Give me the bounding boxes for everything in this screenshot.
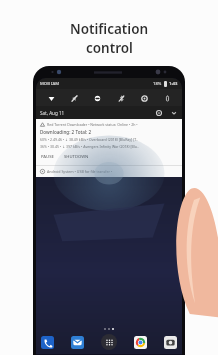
- staticText: Android System • USB for file transfer •: [47, 169, 113, 174]
- staticText: SHUTDOWN: [64, 154, 89, 160]
- button[interactable]: Phone: [41, 336, 54, 349]
- button[interactable]: Settings: [154, 108, 163, 117]
- button[interactable]: Battery saver: [159, 90, 175, 106]
- staticText: 18%: [153, 81, 162, 87]
- button[interactable]: Bluetooth off: [113, 90, 129, 106]
- button[interactable]: Do not disturb: [89, 90, 105, 106]
- button[interactable]: Camera: [164, 336, 177, 349]
- staticText: Notification: [70, 20, 149, 38]
- button[interactable]: Android System • USB for file transfer •: [36, 166, 182, 177]
- button[interactable]: All apps: [101, 334, 117, 350]
- button[interactable]: Expand: [169, 108, 178, 117]
- staticText: 36% • 30.45 • ↓ 397 kB/s • Avengers Infi…: [40, 144, 139, 149]
- button[interactable]: SHUTDOWN: [63, 153, 90, 161]
- staticText: Downloading: 2 Total: 2: [40, 129, 92, 135]
- button[interactable]: Messages: [71, 336, 84, 349]
- staticText: Sat, Aug 11: [40, 110, 65, 116]
- staticText: 60% • 2.49.46 • ↓ 38.49 kB/s • Overboard…: [40, 137, 138, 142]
- button[interactable]: Wi-Fi: [43, 90, 59, 106]
- button[interactable]: Red Torrent Downloader • Network status:…: [36, 119, 182, 165]
- button[interactable]: Auto rotate: [136, 90, 152, 106]
- staticText: 1:43: [169, 81, 178, 87]
- staticText: control: [86, 39, 133, 57]
- staticText: Red Torrent Downloader • Network status:…: [47, 122, 138, 127]
- staticText: MOB IAM: [40, 81, 60, 87]
- button[interactable]: PAUSE: [40, 153, 55, 161]
- button[interactable]: Chrome: [134, 336, 147, 349]
- staticText: PAUSE: [41, 154, 54, 160]
- button[interactable]: Mute: [66, 90, 82, 106]
